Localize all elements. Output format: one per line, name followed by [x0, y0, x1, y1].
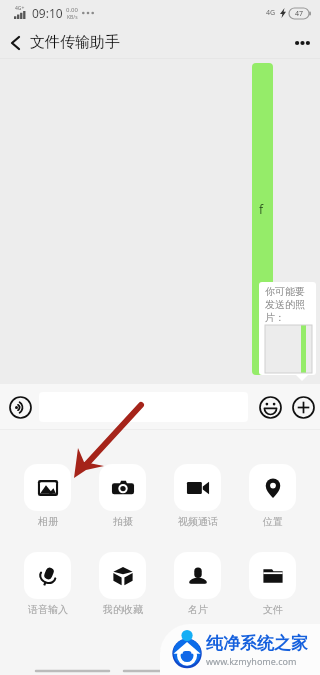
staticText: 4G	[266, 8, 276, 18]
button[interactable]: Back	[0, 28, 30, 58]
staticText: 我的收藏	[103, 603, 143, 616]
button[interactable]: 拍摄	[99, 464, 146, 528]
staticText: www.kzmyhome.com	[206, 655, 297, 667]
staticText: 文件	[263, 603, 283, 616]
staticText: 位置	[263, 515, 283, 528]
staticText: KB/s	[67, 14, 78, 21]
staticText: 视频通话	[178, 515, 218, 528]
button[interactable]: 语音输入	[24, 552, 71, 616]
staticText: 你可能要发送的照片：	[265, 285, 308, 324]
staticText: 4G+	[15, 5, 25, 12]
button[interactable]: More options	[284, 28, 320, 58]
button[interactable]: 名片	[174, 552, 221, 616]
button[interactable]: 位置	[249, 464, 296, 528]
button[interactable]: 文件	[249, 552, 296, 616]
staticText: 拍摄	[113, 515, 133, 528]
staticText: 09:10	[32, 5, 63, 21]
button[interactable]: 相册	[24, 464, 71, 528]
staticText: 语音输入	[28, 603, 68, 616]
button[interactable]: Emoji	[257, 394, 283, 420]
staticText: 文件传输助手	[30, 33, 120, 52]
button[interactable]: Voice input	[7, 394, 33, 420]
button[interactable]: 我的收藏	[99, 552, 146, 616]
staticText: 47	[295, 9, 304, 19]
staticText: f	[259, 201, 264, 217]
staticText: 名片	[188, 603, 208, 616]
staticText: 纯净系统之家	[206, 633, 308, 654]
button[interactable]: 视频通话	[174, 464, 221, 528]
staticText: 相册	[38, 515, 58, 528]
button[interactable]	[39, 392, 248, 422]
button[interactable]: More functions	[290, 394, 316, 420]
staticText: 0.00	[66, 6, 78, 14]
